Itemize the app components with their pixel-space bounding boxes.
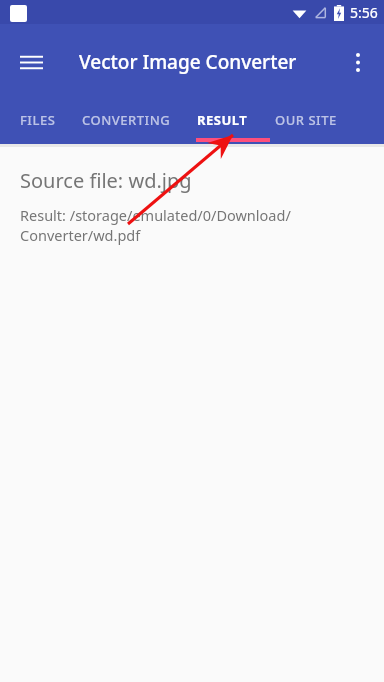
staticText: RESULT bbox=[197, 111, 248, 129]
button[interactable]: RESULT bbox=[197, 100, 248, 144]
staticText: Result: /storage/emulated/0/Download/ Co… bbox=[20, 205, 291, 245]
button[interactable]: CONVERTING bbox=[82, 100, 171, 144]
button[interactable]: FILES bbox=[20, 100, 56, 144]
button[interactable]: Open navigation drawer bbox=[10, 41, 52, 83]
staticText: 5:56 bbox=[350, 3, 378, 22]
button[interactable]: OUR SITE bbox=[275, 100, 337, 144]
staticText: Vector Image Converter bbox=[79, 49, 297, 75]
staticText: OUR SITE bbox=[275, 111, 337, 129]
button[interactable]: More options bbox=[336, 40, 380, 84]
staticText: FILES bbox=[20, 111, 56, 129]
staticText: Source file: wd.jpg bbox=[20, 167, 192, 194]
staticText: CONVERTING bbox=[82, 111, 171, 129]
